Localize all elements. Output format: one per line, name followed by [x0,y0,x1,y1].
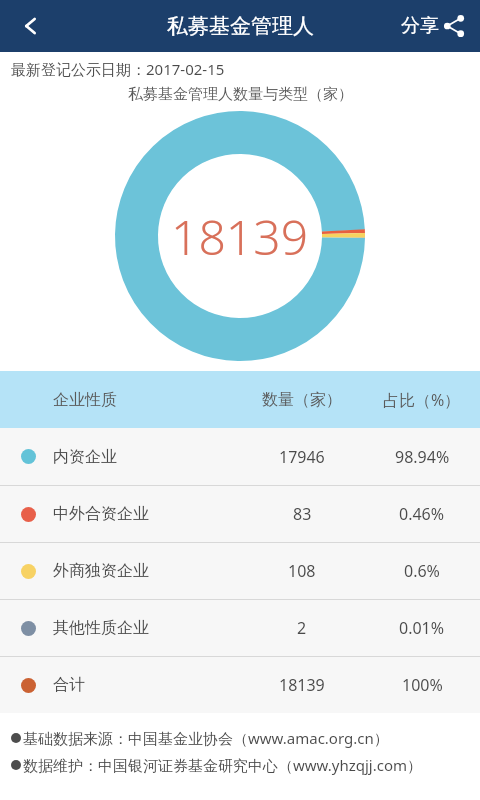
staticText: 0.01% [399,617,445,639]
staticText: 108 [288,560,316,582]
staticText: 0.6% [404,560,440,582]
staticText: 98.94% [395,446,450,468]
button[interactable]: 外商独资企业 [0,543,480,599]
staticText: 私募基金管理人 [167,13,314,39]
staticText: 数据维护：中国银河证券基金研究中心（www.yhzqjj.com） [23,755,423,775]
staticText: 0.46% [399,503,445,525]
staticText: 内资企业 [53,447,117,467]
staticText: 17946 [279,446,325,468]
staticText: 18139 [279,674,325,696]
staticText: 数量（家） [262,390,342,410]
button[interactable]: 其他性质企业 [0,600,480,656]
staticText: 83 [293,503,312,525]
button[interactable]: 分享 [397,0,470,52]
button[interactable]: 内资企业 [0,428,480,485]
staticText: 合计 [53,675,85,695]
staticText: 企业性质 [53,390,117,410]
staticText: 分享 [401,14,439,38]
staticText: 100% [402,674,443,696]
button[interactable]: Back [0,0,62,52]
staticText: 私募基金管理人数量与类型（家） [128,85,353,104]
staticText: 中外合资企业 [53,504,149,524]
staticText: 18139 [171,204,309,269]
staticText: 2 [297,617,307,639]
staticText: 其他性质企业 [53,618,149,638]
button[interactable]: 合计 [0,657,480,713]
staticText: 基础数据来源：中国基金业协会（www.amac.org.cn） [23,728,389,748]
staticText: 最新登记公示日期：2017-02-15 [11,59,225,79]
button[interactable]: 中外合资企业 [0,486,480,542]
staticText: 外商独资企业 [53,561,149,581]
staticText: 占比（%） [383,389,461,411]
